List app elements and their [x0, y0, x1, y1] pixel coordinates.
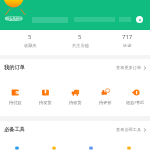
staticText: 待评价: [99, 100, 112, 105]
staticText: 待发货: [39, 100, 52, 105]
staticText: 收藏夹: [24, 43, 37, 48]
staticText: 待收货: [69, 100, 82, 105]
button[interactable]: 717: [105, 33, 150, 48]
staticText: 待付款: [9, 100, 22, 105]
button[interactable]: 待付款: [0, 88, 30, 105]
button[interactable]: [74, 146, 112, 150]
staticText: 查看全部工具: [116, 127, 142, 132]
staticText: 必备工具: [4, 126, 25, 133]
staticText: 5: [78, 33, 82, 41]
button[interactable]: 待评价: [90, 88, 120, 105]
staticText: 我的订单: [4, 64, 25, 71]
staticText: 关注店铺: [72, 43, 89, 48]
button[interactable]: [37, 146, 74, 150]
button[interactable]: 待发货: [30, 88, 60, 105]
staticText: 退款/售后: [126, 100, 145, 106]
button[interactable]: 退款/售后: [120, 88, 150, 106]
button[interactable]: Member centre: [136, 16, 143, 23]
button[interactable]: View all tools: [116, 127, 147, 132]
staticText: 5: [28, 33, 32, 41]
button[interactable]: 待收货: [60, 88, 90, 105]
staticText: 查看更多订单: [116, 65, 142, 70]
staticText: 88会员积分: [5, 16, 23, 21]
staticText: 717: [122, 33, 133, 41]
button[interactable]: 5: [5, 33, 55, 48]
button[interactable]: [112, 146, 150, 150]
staticText: 足迹: [123, 43, 132, 48]
button[interactable]: 5: [55, 33, 105, 48]
button[interactable]: [0, 146, 37, 150]
button[interactable]: 88会员积分: [5, 16, 23, 21]
button[interactable]: View more orders: [116, 65, 147, 70]
